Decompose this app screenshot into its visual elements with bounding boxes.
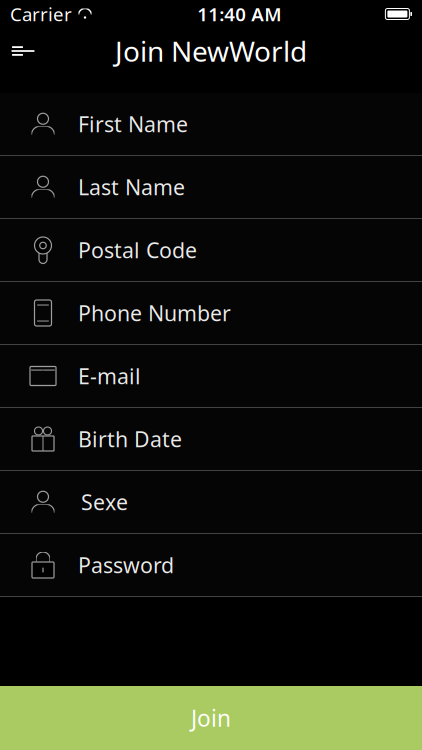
staticText: Join (191, 703, 231, 733)
staticText: E-mail (78, 362, 141, 390)
button[interactable]: Sexe (0, 471, 422, 534)
staticText: Password (78, 551, 174, 579)
button[interactable]: Phone Number (0, 282, 422, 345)
staticText: Join NewWorld (115, 32, 307, 70)
staticText: 11:40 AM (197, 2, 281, 26)
button[interactable]: Postal Code (0, 219, 422, 282)
button[interactable]: Join (0, 686, 422, 750)
button[interactable]: Password (0, 534, 422, 597)
button[interactable]: First Name (0, 93, 422, 156)
button[interactable]: Last Name (0, 156, 422, 219)
staticText: Carrier (10, 2, 72, 26)
staticText: Postal Code (78, 236, 197, 264)
staticText: Birth Date (78, 425, 182, 453)
staticText: Sexe (81, 488, 128, 516)
staticText: Last Name (78, 173, 185, 201)
button[interactable]: Back (0, 29, 46, 73)
staticText: First Name (78, 110, 188, 138)
staticText: Phone Number (78, 299, 231, 327)
button[interactable]: E-mail (0, 345, 422, 408)
button[interactable]: Birth Date (0, 408, 422, 471)
